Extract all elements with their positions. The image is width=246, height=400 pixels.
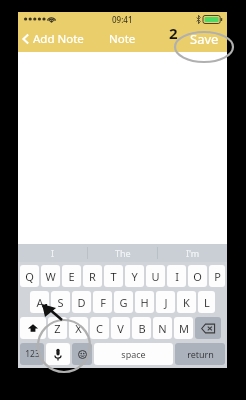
button[interactable]: Z: [48, 317, 67, 339]
staticText: I: [175, 269, 179, 284]
button[interactable]: I: [18, 244, 87, 262]
button[interactable]: return: [175, 343, 225, 365]
button[interactable]: The: [88, 244, 157, 262]
staticText: Y: [131, 269, 138, 284]
staticText: F: [100, 295, 106, 310]
staticText: S: [57, 295, 64, 310]
staticText: K: [183, 295, 190, 310]
staticText: return: [187, 348, 214, 360]
button[interactable]: [195, 317, 221, 339]
button[interactable]: A: [30, 291, 49, 313]
staticText: J: [164, 295, 168, 310]
staticText: V: [117, 321, 124, 336]
button[interactable]: I: [167, 265, 186, 287]
button[interactable]: Q: [20, 265, 39, 287]
staticText: B: [138, 321, 146, 336]
staticText: C: [96, 321, 103, 336]
button[interactable]: Save: [190, 30, 219, 48]
button[interactable]: M: [174, 317, 193, 339]
staticText: R: [89, 269, 96, 284]
button[interactable]: J: [156, 291, 175, 313]
staticText: A: [36, 295, 44, 310]
button[interactable]: O: [188, 265, 207, 287]
staticText: N: [158, 321, 167, 336]
staticText: Save: [190, 30, 219, 48]
button[interactable]: F: [93, 291, 112, 313]
staticText: W: [45, 269, 56, 284]
button[interactable]: X: [69, 317, 88, 339]
staticText: Z: [54, 321, 61, 336]
button[interactable]: N: [153, 317, 172, 339]
staticText: 2: [169, 23, 178, 43]
staticText: P: [214, 269, 221, 284]
staticText: space: [121, 348, 146, 360]
button[interactable]: H: [135, 291, 154, 313]
button[interactable]: C: [90, 317, 109, 339]
staticText: 1: [41, 298, 50, 318]
staticText: Q: [25, 269, 34, 284]
button[interactable]: space: [94, 343, 173, 365]
button[interactable]: B: [132, 317, 151, 339]
staticText: U: [151, 269, 160, 284]
staticText: The: [115, 247, 131, 259]
staticText: E: [68, 269, 75, 284]
staticText: X: [75, 321, 82, 336]
button[interactable]: L: [198, 291, 215, 313]
button[interactable]: D: [72, 291, 91, 313]
button[interactable]: R: [83, 265, 102, 287]
staticText: 123: [25, 348, 40, 360]
button[interactable]: Dictation microphone: [46, 343, 70, 365]
staticText: D: [77, 295, 86, 310]
button[interactable]: E: [62, 265, 81, 287]
staticText: H: [140, 295, 149, 310]
button[interactable]: P: [209, 265, 225, 287]
button[interactable]: T: [104, 265, 123, 287]
button[interactable]: 123: [20, 343, 44, 365]
staticText: L: [204, 295, 210, 310]
button[interactable]: V: [111, 317, 130, 339]
button[interactable]: I'm: [158, 244, 227, 262]
button[interactable]: Y: [125, 265, 144, 287]
staticText: I: [51, 247, 55, 259]
button[interactable]: Emoji keyboard: [72, 343, 92, 365]
staticText: O: [193, 269, 202, 284]
staticText: 09:41: [112, 14, 133, 25]
staticText: I'm: [186, 247, 200, 259]
button[interactable]: [20, 317, 46, 339]
button[interactable]: Add Note: [21, 31, 84, 47]
button[interactable]: G: [114, 291, 133, 313]
staticText: T: [110, 269, 117, 284]
button[interactable]: S: [51, 291, 70, 313]
button[interactable]: U: [146, 265, 165, 287]
button[interactable]: [18, 52, 227, 244]
staticText: G: [119, 295, 128, 310]
button[interactable]: W: [41, 265, 60, 287]
staticText: Note: [109, 31, 136, 47]
button[interactable]: K: [177, 291, 196, 313]
staticText: M: [179, 321, 189, 336]
staticText: Add Note: [33, 31, 84, 47]
